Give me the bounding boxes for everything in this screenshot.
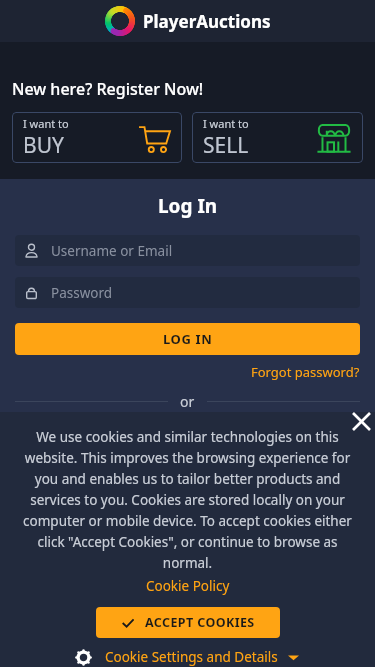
- button[interactable]: Username or Email: [15, 235, 360, 266]
- staticText: ACCEPT COOKIES: [145, 614, 255, 631]
- staticText: or: [180, 392, 195, 411]
- staticText: Log In: [158, 193, 218, 219]
- button[interactable]: Forgot password?: [251, 363, 360, 381]
- staticText: We use cookies and similar technologies …: [18, 428, 357, 572]
- staticText: PlayerAuctions: [143, 10, 271, 33]
- staticText: Cookie Settings and Details: [105, 648, 278, 666]
- staticText: I want to: [23, 116, 69, 131]
- button[interactable]: New here? Register Now!: [12, 78, 204, 100]
- button[interactable]: LOG IN: [15, 323, 360, 355]
- button[interactable]: Password: [15, 277, 360, 308]
- button[interactable]: Close: [348, 408, 375, 435]
- staticText: Password: [51, 284, 113, 302]
- staticText: BUY: [23, 131, 64, 160]
- button[interactable]: I want to: [192, 112, 363, 163]
- staticText: I want to: [203, 116, 249, 131]
- button[interactable]: Cookie Settings and Details: [0, 648, 375, 666]
- button[interactable]: ACCEPT COOKIES: [96, 607, 280, 638]
- button[interactable]: Cookie Policy: [146, 577, 230, 595]
- staticText: SELL: [203, 131, 249, 160]
- staticText: LOG IN: [163, 330, 213, 348]
- button[interactable]: I want to: [12, 112, 182, 163]
- staticText: Username or Email: [51, 242, 173, 260]
